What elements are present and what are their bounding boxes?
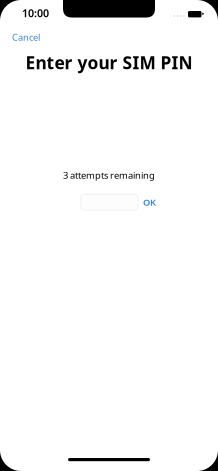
staticText: 3 attempts remaining — [63, 169, 155, 181]
staticText: 10:00 — [22, 6, 49, 20]
staticText: OK — [143, 196, 156, 208]
staticText: Cancel — [12, 31, 40, 43]
button[interactable]: Cancel — [4, 26, 48, 48]
staticText: Enter your SIM PIN — [25, 51, 192, 74]
button[interactable]: OK — [138, 192, 161, 212]
